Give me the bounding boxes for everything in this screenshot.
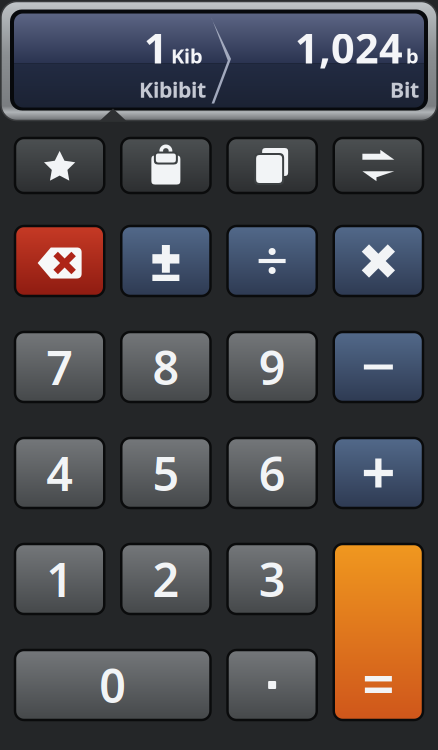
button[interactable]: Swap units: [334, 138, 423, 193]
staticText: 1,024: [295, 20, 403, 75]
staticText: 0: [99, 654, 126, 716]
button[interactable]: 1: [15, 544, 104, 614]
button[interactable]: Decimal point: [227, 650, 317, 720]
staticText: 7: [46, 336, 73, 398]
button[interactable]: Copy: [227, 138, 317, 193]
staticText: 4: [46, 442, 73, 504]
button[interactable]: 4: [15, 438, 104, 508]
button[interactable]: 5: [121, 438, 210, 508]
staticText: 9: [259, 336, 286, 398]
staticText: Bit: [390, 75, 419, 104]
button[interactable]: 3: [227, 544, 317, 614]
button[interactable]: 2: [121, 544, 210, 614]
button[interactable]: Multiply: [334, 226, 423, 296]
button[interactable]: Delete: [15, 226, 104, 296]
staticText: 2: [152, 548, 179, 610]
button[interactable]: Favorites: [15, 138, 104, 193]
button[interactable]: Minus: [334, 332, 423, 402]
staticText: 5: [152, 442, 179, 504]
staticText: b: [406, 42, 419, 69]
staticText: Kibibit: [139, 75, 206, 104]
button[interactable]: Equals: [334, 544, 423, 720]
button[interactable]: 6: [227, 438, 317, 508]
staticText: 6: [259, 442, 286, 504]
staticText: 3: [259, 548, 286, 610]
staticText: Kib: [171, 42, 203, 69]
button[interactable]: 0: [15, 650, 210, 720]
staticText: 8: [152, 336, 179, 398]
staticText: 1: [144, 20, 168, 75]
button[interactable]: 8: [121, 332, 210, 402]
button[interactable]: 7: [15, 332, 104, 402]
button[interactable]: Paste: [121, 138, 210, 193]
staticText: 1: [46, 548, 73, 610]
button[interactable]: Plus or minus: [121, 226, 210, 296]
button[interactable]: Divide: [227, 226, 317, 296]
button[interactable]: Plus: [334, 438, 423, 508]
button[interactable]: 9: [227, 332, 317, 402]
